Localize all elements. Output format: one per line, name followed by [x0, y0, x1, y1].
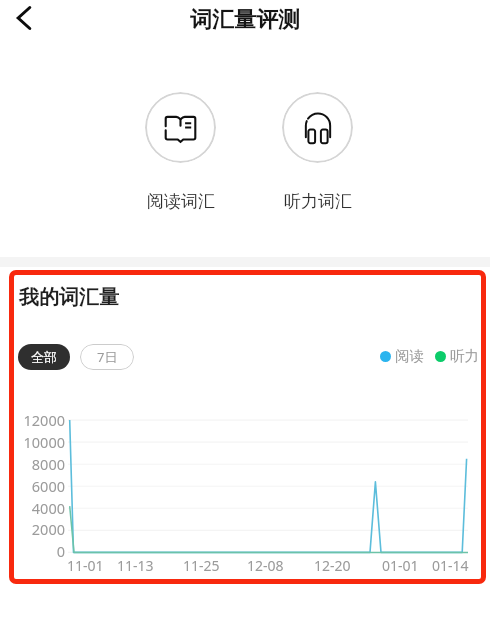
staticText: 11-25: [183, 556, 220, 575]
staticText: 词汇量评测: [190, 6, 300, 34]
staticText: 01-14: [432, 556, 469, 575]
staticText: 听力词汇: [284, 191, 352, 212]
button[interactable]: Back: [2, 0, 46, 40]
other: Reading vocabulary: [164, 111, 198, 145]
staticText: 2000: [9, 519, 65, 539]
staticText: 01-01: [382, 556, 419, 575]
staticText: 阅读词汇: [147, 191, 215, 212]
staticText: 12000: [9, 410, 65, 430]
staticText: 我的词汇量: [19, 285, 119, 310]
staticText: 12-20: [314, 556, 351, 575]
staticText: 7日: [97, 348, 118, 366]
other: Listening vocabulary: [301, 111, 335, 145]
staticText: 阅读: [395, 347, 424, 365]
staticText: 11-13: [117, 556, 154, 575]
staticText: 11-01: [67, 556, 104, 575]
staticText: 0: [9, 541, 65, 561]
staticText: 12-08: [247, 556, 284, 575]
staticText: 听力: [450, 347, 479, 365]
staticText: 全部: [31, 349, 57, 365]
staticText: 6000: [9, 476, 65, 496]
button[interactable]: 全部: [18, 344, 70, 370]
button[interactable]: Reading vocabulary: [145, 92, 216, 212]
staticText: 8000: [9, 454, 65, 474]
button[interactable]: 7日: [80, 344, 134, 370]
staticText: 4000: [9, 498, 65, 518]
staticText: 10000: [9, 432, 65, 452]
button[interactable]: Listening vocabulary: [282, 92, 353, 212]
